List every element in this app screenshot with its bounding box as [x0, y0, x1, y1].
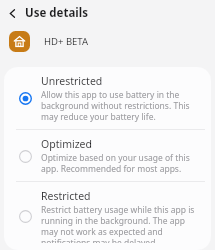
button[interactable]: Optimized: [4, 130, 211, 181]
button[interactable]: Back: [4, 5, 20, 21]
button[interactable]: Restricted: [4, 182, 211, 250]
staticText: Optimize based on your usage of this app…: [41, 152, 201, 174]
staticText: Unrestricted: [41, 74, 103, 88]
button[interactable]: Unrestricted: [4, 67, 211, 129]
staticText: Allow this app to use battery in the bac…: [41, 89, 201, 122]
staticText: Restricted: [41, 189, 91, 203]
staticText: Optimized: [41, 137, 92, 151]
staticText: Restrict battery usage while this app is…: [41, 204, 201, 243]
staticText: Use details: [25, 5, 88, 21]
staticText: HD+ BETA: [44, 35, 89, 48]
